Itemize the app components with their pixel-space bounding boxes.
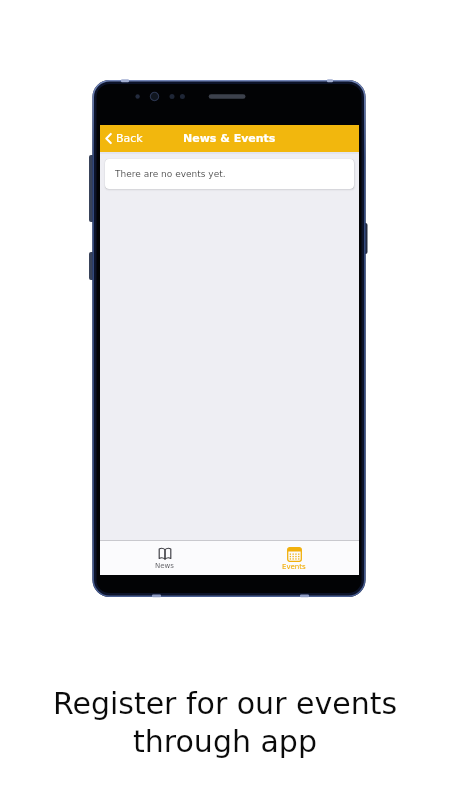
button[interactable]: Back [103,130,145,147]
staticText: Back [116,132,143,145]
staticText: Events [282,563,306,571]
button[interactable]: There are no events yet. [105,159,354,189]
staticText: Register for our events through app [0,686,450,759]
staticText: News & Events [183,132,276,145]
button[interactable]: News [100,541,229,575]
staticText: There are no events yet. [115,169,226,179]
staticText: News [155,562,174,570]
button[interactable]: Events [229,541,359,575]
